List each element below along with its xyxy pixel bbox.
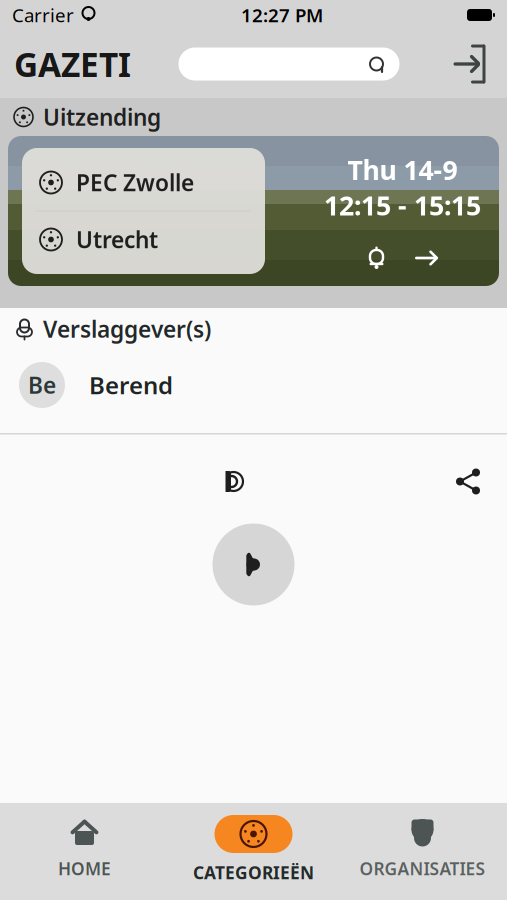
button[interactable]: ORGANISATIES — [338, 819, 507, 880]
staticText: Be — [28, 370, 56, 400]
button[interactable]: PEC Zwolle versus Utrecht, Thursday 14-9 — [8, 136, 499, 286]
staticText: GAZETI — [14, 42, 131, 86]
button[interactable]: HOME — [0, 819, 169, 880]
button[interactable]: Search — [178, 47, 399, 80]
button[interactable]: Share — [453, 466, 483, 496]
button[interactable]: CATEGORIEËN — [169, 815, 338, 884]
staticText: Uitzending — [43, 102, 161, 132]
staticText: Verslaggever(s) — [43, 314, 211, 344]
button[interactable]: Play — [212, 523, 294, 605]
staticText: Thu 14-9 — [347, 152, 457, 187]
button[interactable]: Log in — [447, 41, 493, 87]
button[interactable]: Volume — [209, 466, 243, 496]
staticText: 12:27 PM — [241, 3, 323, 27]
staticText: PEC Zwolle — [76, 167, 194, 197]
staticText: HOME — [58, 857, 111, 880]
staticText: Carrier — [12, 3, 74, 27]
staticText: ORGANISATIES — [359, 857, 485, 880]
staticText: Berend — [89, 369, 173, 401]
staticText: CATEGORIEËN — [193, 861, 314, 884]
staticText: 12:15 - 15:15 — [324, 187, 481, 223]
staticText: Utrecht — [76, 224, 158, 254]
button[interactable]: Be — [0, 350, 507, 420]
